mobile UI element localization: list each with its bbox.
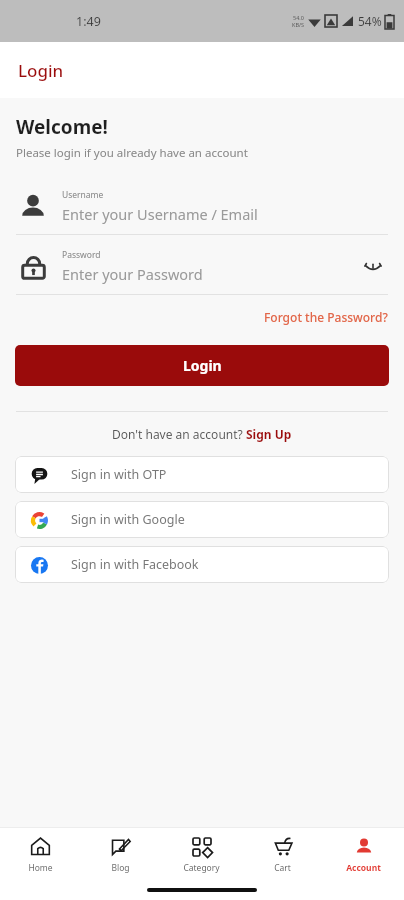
staticText: Password: [62, 249, 101, 261]
button[interactable]: Show password: [358, 252, 388, 282]
staticText: Login: [183, 356, 222, 375]
button[interactable]: Password: [0, 249, 404, 284]
button[interactable]: Username: [0, 189, 404, 224]
staticText: Enter your Username / Email: [62, 204, 258, 224]
staticText: Welcome!: [16, 114, 108, 140]
staticText: Sign Up: [246, 426, 292, 442]
staticText: Enter your Password: [62, 264, 203, 284]
staticText: 54.0: [293, 14, 304, 21]
staticText: Forgot the Password?: [264, 309, 388, 325]
staticText: Don't have an account?: [112, 426, 246, 442]
staticText: Username: [62, 189, 104, 201]
button[interactable]: Forgot the Password?: [248, 307, 404, 327]
staticText: Sign in with OTP: [71, 466, 167, 483]
staticText: Account: [346, 862, 381, 874]
button[interactable]: Account: [323, 828, 404, 880]
button[interactable]: Blog: [80, 828, 161, 880]
staticText: KB/S: [292, 21, 305, 28]
staticText: Sign in with Facebook: [71, 556, 199, 573]
staticText: Login: [18, 59, 64, 82]
staticText: 1:49: [76, 13, 101, 30]
button[interactable]: Login: [15, 345, 389, 386]
button[interactable]: Home: [0, 828, 80, 880]
staticText: Category: [183, 862, 220, 874]
staticText: Cart: [274, 862, 291, 874]
staticText: Blog: [111, 862, 130, 874]
staticText: Home: [28, 862, 53, 874]
button[interactable]: Sign in with Google: [15, 501, 389, 538]
staticText: Please login if you already have an acco…: [16, 145, 248, 161]
button[interactable]: Sign Up: [246, 426, 292, 442]
button[interactable]: Cart: [242, 828, 323, 880]
staticText: Sign in with Google: [71, 511, 185, 528]
button[interactable]: Category: [161, 828, 242, 880]
button[interactable]: Sign in with OTP: [15, 456, 389, 493]
button[interactable]: Sign in with Facebook: [15, 546, 389, 583]
staticText: 54%: [358, 13, 382, 29]
